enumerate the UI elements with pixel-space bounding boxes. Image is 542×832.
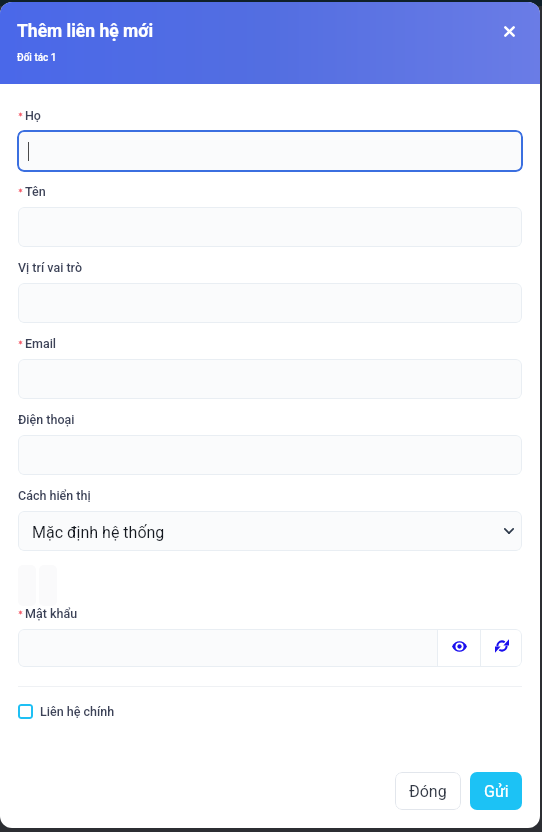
button[interactable]: Hiện mật khẩu (438, 629, 480, 667)
button[interactable]: Đóng (496, 18, 523, 45)
button[interactable]: Vị trí vai trò (18, 283, 522, 323)
button[interactable]: Liên hệ chính (18, 704, 115, 719)
staticText: Mật khẩu (25, 606, 78, 621)
staticText: Email (25, 336, 57, 351)
button[interactable]: Tạo mật khẩu (481, 629, 522, 667)
staticText: Họ (25, 108, 41, 123)
staticText: Cách hiển thị (18, 488, 91, 503)
staticText: Mặc định hệ thống (32, 523, 165, 542)
staticText: Điện thoại (18, 412, 75, 427)
button[interactable]: Tên (18, 207, 522, 247)
staticText: Đóng (409, 782, 447, 801)
button[interactable]: Đóng (395, 772, 461, 810)
staticText: Vị trí vai trò (18, 260, 82, 275)
staticText: Liên hệ chính (40, 704, 115, 719)
button[interactable]: Gửi (470, 772, 522, 810)
staticText: Thêm liên hệ mới (17, 21, 154, 42)
button[interactable]: Email (18, 359, 522, 399)
button[interactable]: Điện thoại (18, 435, 522, 475)
button[interactable]: Mật khẩu (18, 629, 437, 667)
button[interactable]: Mặc định hệ thống (18, 511, 522, 551)
staticText: Tên (25, 184, 46, 199)
button[interactable]: Họ (17, 130, 523, 172)
staticText: Đối tác 1 (17, 52, 57, 64)
staticText: Gửi (484, 782, 509, 801)
